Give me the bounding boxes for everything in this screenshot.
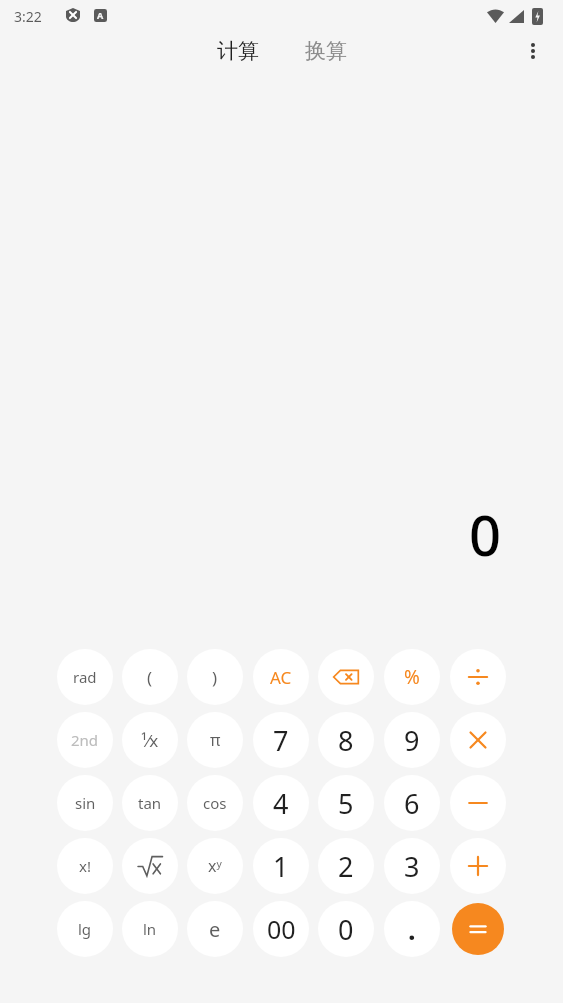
- button[interactable]: lg: [57, 901, 113, 957]
- button[interactable]: sin: [57, 775, 113, 831]
- button[interactable]: x!: [57, 838, 113, 894]
- staticText: 1: [273, 848, 289, 885]
- staticText: cos: [203, 793, 227, 813]
- staticText: 计算: [217, 38, 259, 64]
- staticText: tan: [138, 793, 162, 813]
- button[interactable]: ln: [122, 901, 178, 957]
- button[interactable]: 3: [384, 838, 440, 894]
- staticText: lg: [78, 919, 92, 939]
- staticText: x!: [79, 856, 91, 876]
- button[interactable]: 4: [253, 775, 309, 831]
- button[interactable]: 换算: [295, 32, 357, 70]
- button[interactable]: Square root: [122, 838, 178, 894]
- button[interactable]: tan: [122, 775, 178, 831]
- button[interactable]: 5: [318, 775, 374, 831]
- button[interactable]: π: [187, 712, 243, 768]
- button[interactable]: Minus: [450, 775, 506, 831]
- button[interactable]: 7: [253, 712, 309, 768]
- button[interactable]: 9: [384, 712, 440, 768]
- button[interactable]: 2: [318, 838, 374, 894]
- staticText: %: [404, 664, 420, 690]
- staticText: 3: [404, 848, 420, 885]
- button[interactable]: Divide: [450, 649, 506, 705]
- button[interactable]: X to the power of Y: [187, 838, 243, 894]
- staticText: 6: [404, 785, 420, 822]
- staticText: 00: [267, 912, 296, 946]
- staticText: e: [209, 916, 221, 943]
- staticText: xʸ: [208, 855, 222, 877]
- staticText: 2nd: [71, 730, 99, 750]
- staticText: ln: [143, 919, 157, 939]
- button[interactable]: rad: [57, 649, 113, 705]
- button[interactable]: Equals: [452, 903, 504, 955]
- button[interactable]: More options: [509, 27, 557, 75]
- staticText: 4: [273, 785, 289, 822]
- button[interactable]: .: [384, 901, 440, 957]
- button[interactable]: 0: [318, 901, 374, 957]
- staticText: 3:22: [14, 7, 42, 26]
- staticText: 2: [338, 848, 354, 885]
- button[interactable]: 6: [384, 775, 440, 831]
- button[interactable]: 2nd: [57, 712, 113, 768]
- staticText: rad: [73, 667, 97, 687]
- button[interactable]: 00: [253, 901, 309, 957]
- staticText: 0: [338, 911, 354, 948]
- staticText: 换算: [305, 38, 347, 64]
- staticText: 5: [338, 785, 354, 822]
- button[interactable]: cos: [187, 775, 243, 831]
- staticText: A: [97, 9, 104, 21]
- staticText: ¹⁄x: [141, 729, 159, 752]
- staticText: π: [210, 729, 221, 751]
- staticText: 7: [273, 722, 289, 759]
- staticText: (: [147, 666, 153, 689]
- button[interactable]: One over x: [122, 712, 178, 768]
- button[interactable]: 计算: [207, 32, 269, 70]
- staticText: 0: [468, 496, 501, 572]
- button[interactable]: Multiply: [450, 712, 506, 768]
- button[interactable]: ): [187, 649, 243, 705]
- button[interactable]: Plus: [450, 838, 506, 894]
- button[interactable]: (: [122, 649, 178, 705]
- button[interactable]: AC: [253, 649, 309, 705]
- staticText: ): [212, 666, 218, 689]
- staticText: .: [408, 911, 416, 948]
- button[interactable]: 8: [318, 712, 374, 768]
- staticText: AC: [270, 666, 292, 689]
- staticText: sin: [75, 793, 96, 813]
- staticText: 8: [338, 722, 354, 759]
- staticText: 9: [404, 722, 420, 759]
- button[interactable]: Backspace: [318, 649, 374, 705]
- button[interactable]: %: [384, 649, 440, 705]
- button[interactable]: e: [187, 901, 243, 957]
- button[interactable]: 1: [253, 838, 309, 894]
